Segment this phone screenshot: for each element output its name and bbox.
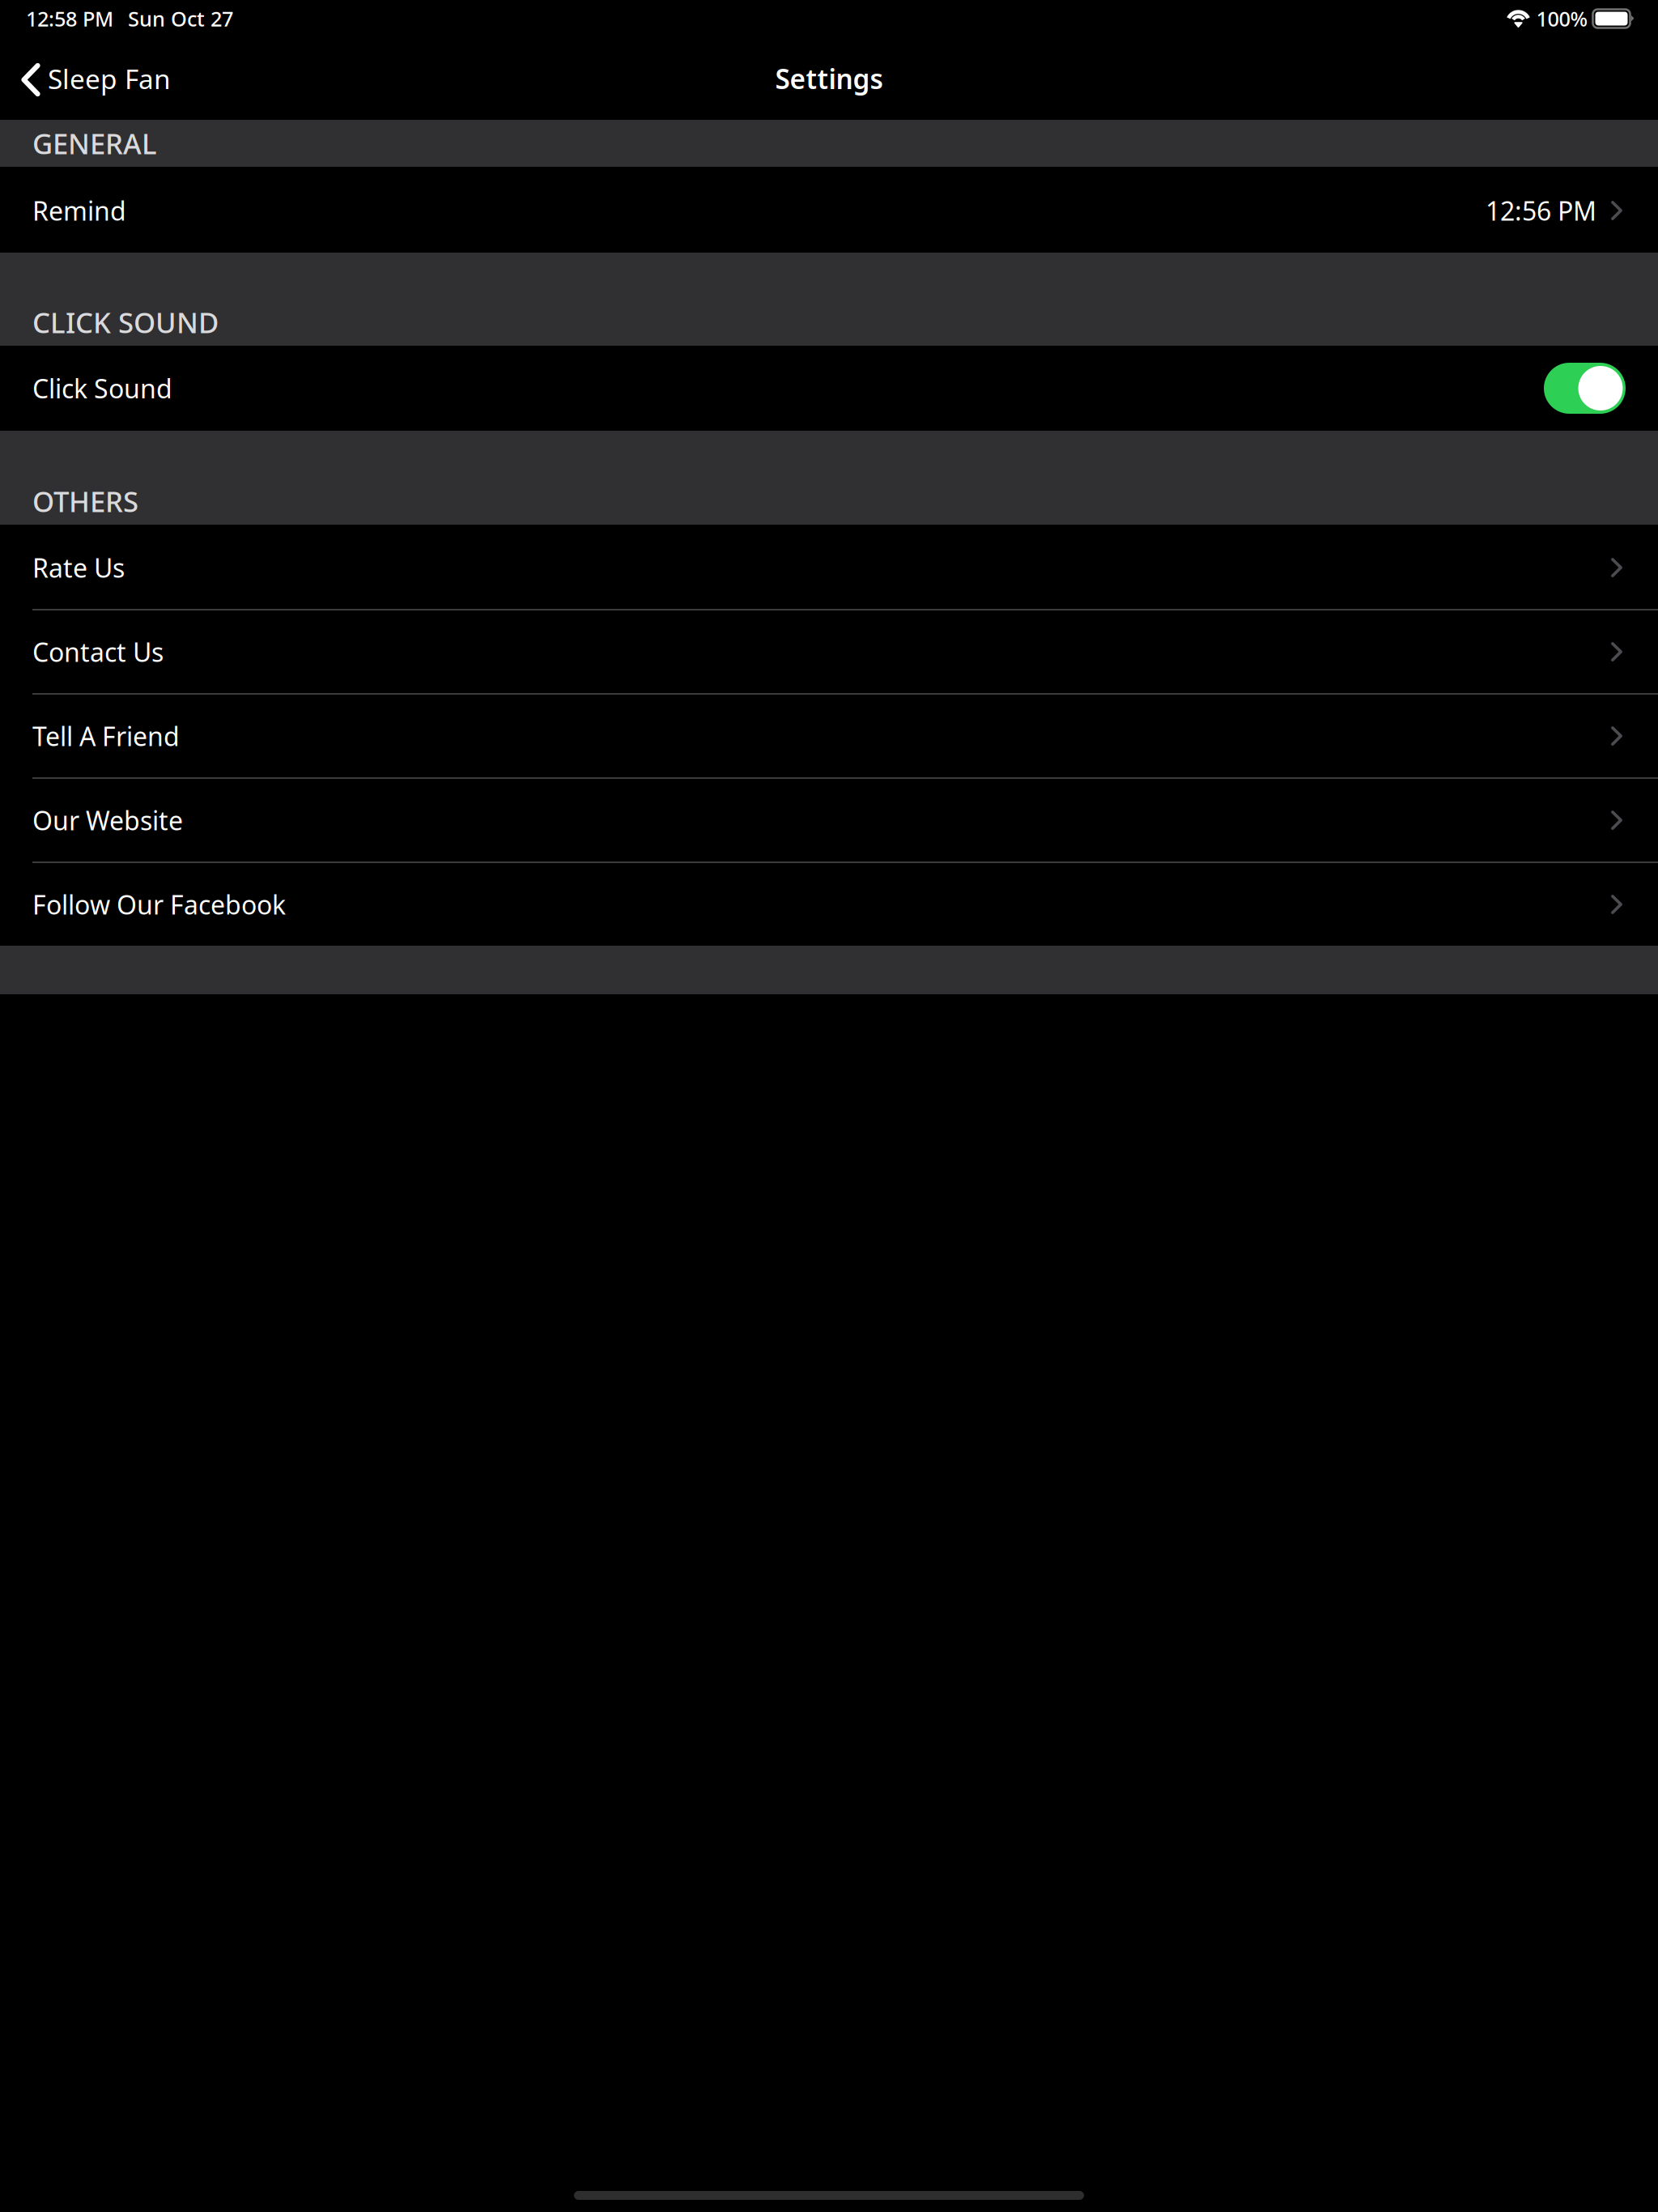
button[interactable]: Our Website <box>0 777 1658 861</box>
button[interactable]: Rate Us <box>0 525 1658 609</box>
staticText: GENERAL <box>32 125 157 162</box>
button[interactable]: Follow Our Facebook <box>0 861 1658 946</box>
staticText: Sun Oct 27 <box>128 5 233 32</box>
staticText: Sleep Fan <box>48 61 171 97</box>
staticText: 12:58 PM <box>26 5 113 32</box>
button[interactable]: Back to Sleep Fan <box>0 38 185 119</box>
staticText: Our Website <box>32 803 183 837</box>
staticText: Contact Us <box>32 635 164 669</box>
staticText: Follow Our Facebook <box>32 887 286 922</box>
staticText: Click Sound <box>32 371 172 405</box>
staticText: Tell A Friend <box>32 719 180 753</box>
staticText: 100% <box>1536 5 1588 32</box>
staticText: Remind <box>32 193 126 228</box>
button[interactable]: Remind <box>0 167 1658 253</box>
staticText: Settings <box>775 61 883 97</box>
button[interactable]: Click Sound <box>0 346 1658 431</box>
staticText: CLICK SOUND <box>32 304 219 341</box>
button[interactable]: Contact Us <box>0 609 1658 693</box>
staticText: OTHERS <box>32 483 138 520</box>
button[interactable]: Tell A Friend <box>0 693 1658 777</box>
staticText: Rate Us <box>32 550 125 585</box>
staticText: 12:56 PM <box>1486 193 1596 228</box>
